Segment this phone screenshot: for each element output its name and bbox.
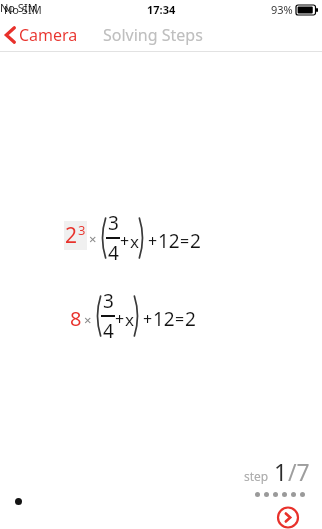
button[interactable]: 2	[64, 205, 201, 266]
staticText: ×	[89, 230, 97, 248]
staticText: 12	[153, 306, 175, 332]
staticText: 93%	[271, 2, 293, 17]
staticText: Camera	[19, 24, 78, 46]
staticText: step	[244, 468, 269, 484]
staticText: +	[120, 230, 130, 252]
staticText: 2	[190, 228, 201, 254]
button[interactable]: 8	[70, 284, 196, 344]
staticText: Solving Steps	[103, 24, 203, 46]
staticText: x	[130, 230, 139, 253]
staticText: /7	[288, 456, 310, 487]
staticText: =	[175, 308, 185, 330]
button[interactable]: Camera	[0, 18, 86, 51]
staticText: 2	[65, 221, 78, 250]
staticText: +	[115, 308, 125, 330]
staticText: 8	[70, 305, 82, 332]
staticText: 12	[158, 228, 180, 254]
staticText: 1	[274, 456, 288, 487]
staticText: 3	[103, 288, 114, 314]
staticText: No SIM	[0, 0, 38, 15]
staticText: 3	[108, 210, 119, 236]
staticText: 4	[108, 240, 119, 266]
staticText: 2	[185, 306, 196, 332]
staticText: 3	[78, 221, 86, 239]
staticText: No SIM	[4, 2, 42, 17]
staticText: ×	[84, 311, 92, 329]
staticText: +	[148, 230, 158, 252]
staticText: =	[180, 230, 190, 252]
staticText: 4	[103, 318, 114, 344]
button[interactable]: Next step	[264, 506, 312, 529]
staticText: x	[125, 308, 134, 331]
staticText: 17:34	[147, 2, 176, 17]
staticText: +	[143, 308, 153, 330]
